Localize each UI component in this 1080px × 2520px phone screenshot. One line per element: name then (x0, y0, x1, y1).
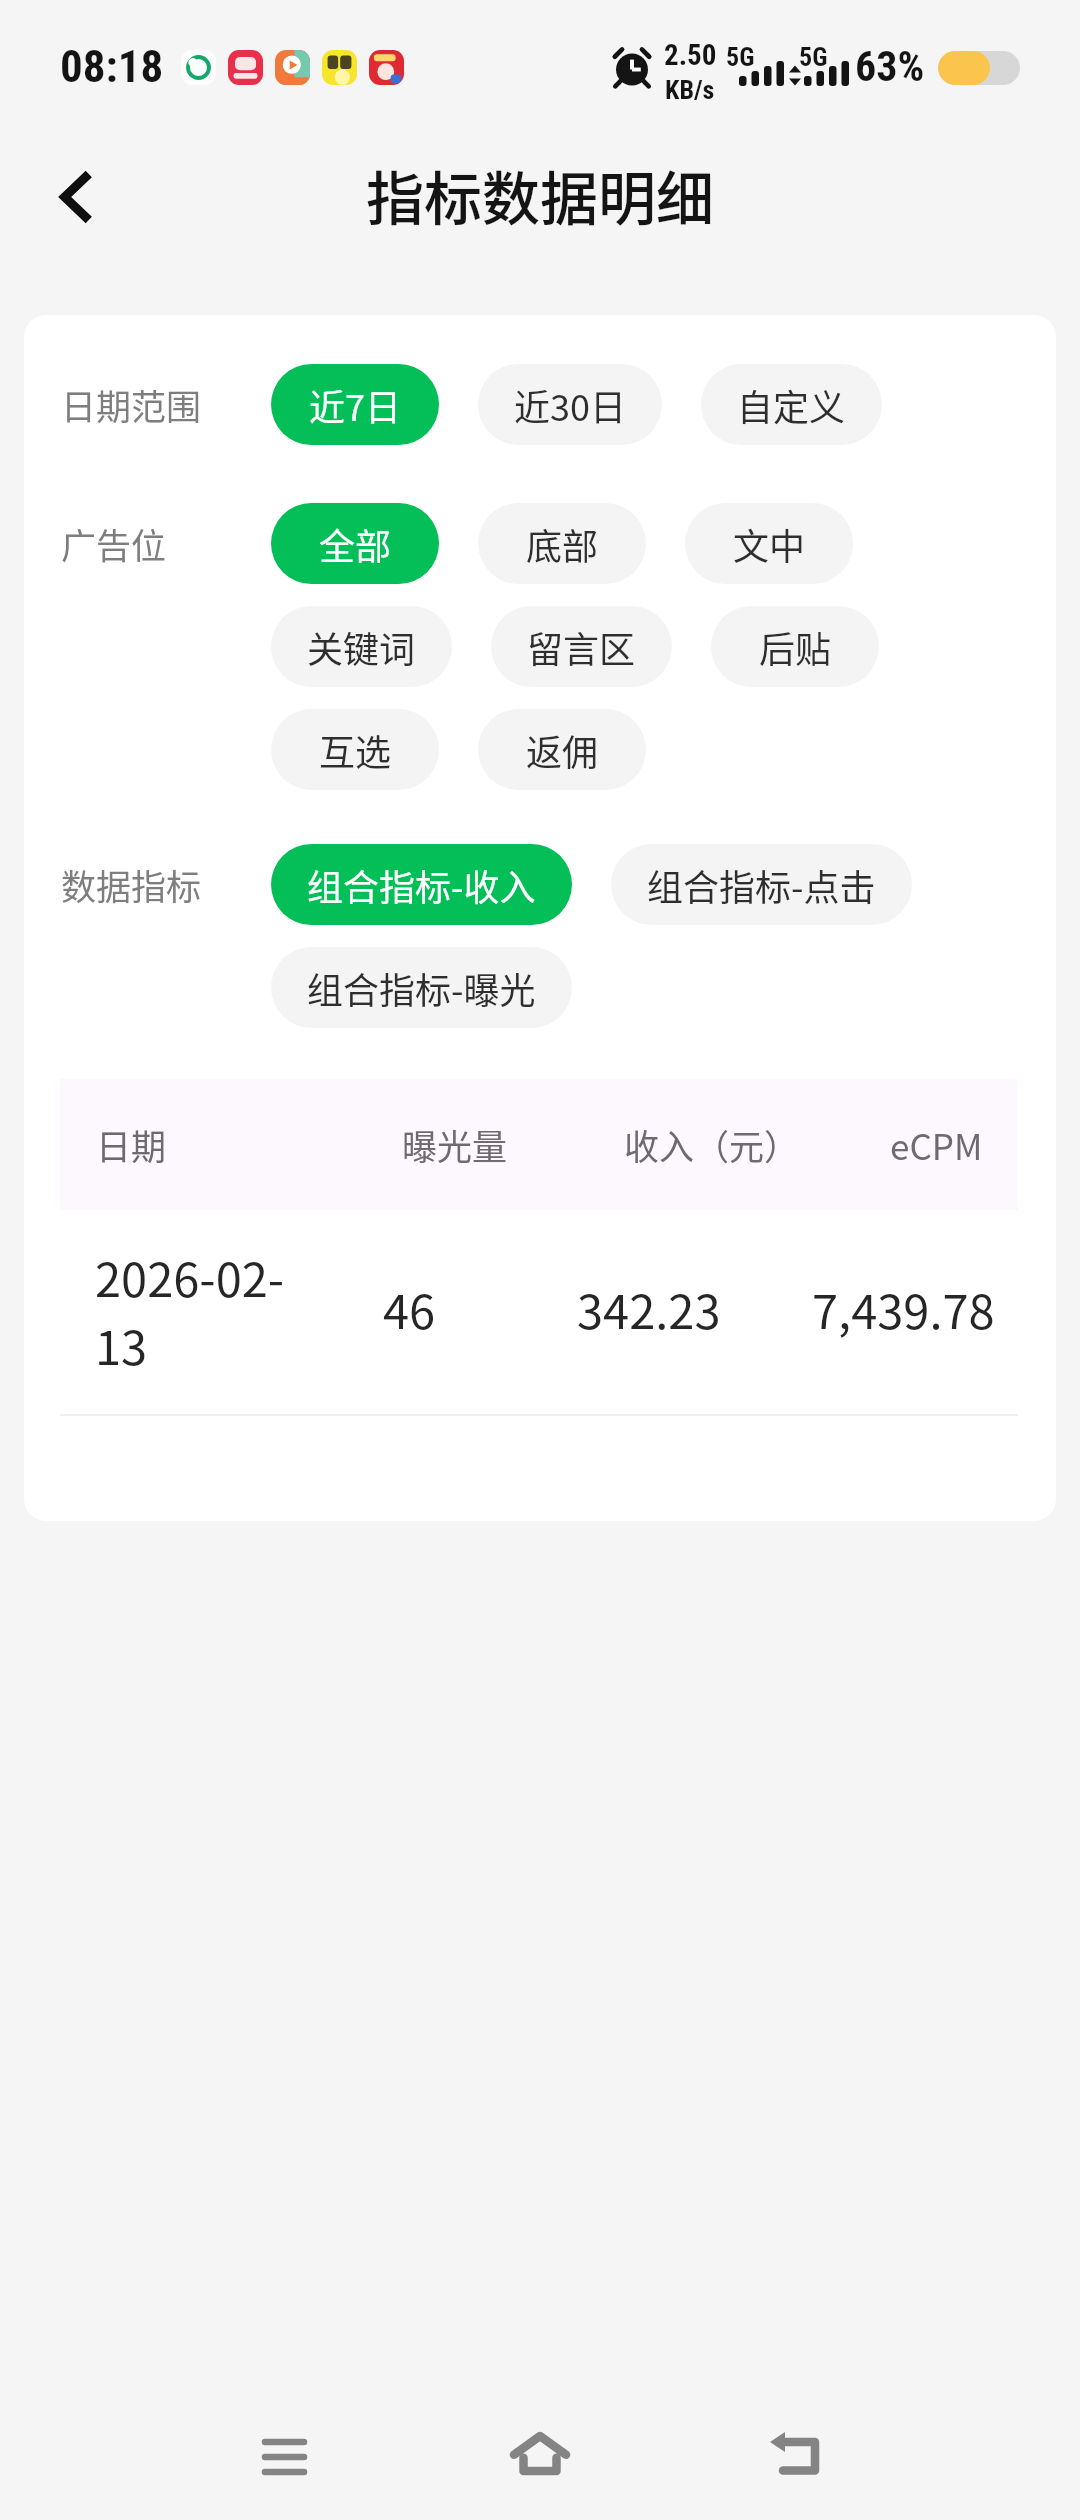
staticText: 7,439.78 (812, 1274, 995, 1342)
staticText: 留言区 (527, 621, 636, 673)
staticText: 近7日 (309, 379, 401, 431)
staticText: 后贴 (759, 621, 832, 673)
staticText: 底部 (526, 518, 599, 570)
button[interactable]: 互选 (271, 709, 439, 790)
staticText: 数据指标 (61, 859, 202, 910)
staticText: 指标数据明细 (0, 153, 1080, 237)
button[interactable]: Home (485, 2398, 595, 2508)
staticText: 近30日 (514, 379, 626, 431)
staticText: 13 (95, 1310, 148, 1378)
staticText: 互选 (319, 724, 392, 776)
staticText: 关键词 (307, 621, 416, 673)
staticText: 63% (855, 42, 925, 91)
staticText: 返佣 (526, 724, 599, 776)
button[interactable]: Back (32, 152, 122, 242)
staticText: 342.23 (577, 1274, 721, 1342)
staticText: 广告位 (61, 518, 167, 569)
button[interactable]: 组合指标-收入 (271, 844, 572, 925)
staticText: 5G (799, 42, 828, 72)
staticText: 2026-02- (95, 1242, 285, 1310)
button[interactable]: 留言区 (491, 606, 672, 687)
button[interactable]: 近7日 (271, 364, 439, 445)
staticText: 08:18 (60, 40, 164, 93)
staticText: 组合指标-点击 (647, 859, 876, 911)
button[interactable]: 近30日 (478, 364, 662, 445)
staticText: 日期 (96, 1119, 167, 1170)
staticText: 全部 (319, 518, 392, 570)
staticText: 2.50 (664, 38, 717, 72)
staticText: 收入（元） (624, 1119, 800, 1170)
staticText: 自定义 (737, 379, 846, 431)
staticText: 曝光量 (402, 1119, 508, 1170)
staticText: 组合指标-收入 (307, 859, 536, 911)
button[interactable]: 返佣 (478, 709, 646, 790)
button[interactable]: 文中 (685, 503, 853, 584)
button[interactable]: 全部 (271, 503, 439, 584)
button[interactable]: Back (740, 2398, 850, 2508)
button[interactable]: 关键词 (271, 606, 452, 687)
button[interactable]: Recent apps (229, 2402, 339, 2512)
button[interactable]: 后贴 (711, 606, 879, 687)
staticText: KB/s (665, 75, 715, 105)
staticText: 文中 (733, 518, 806, 570)
staticText: 日期范围 (61, 379, 202, 430)
button[interactable]: 组合指标-曝光 (271, 947, 572, 1028)
staticText: eCPM (890, 1119, 983, 1170)
staticText: 46 (383, 1274, 436, 1342)
button[interactable]: 自定义 (701, 364, 882, 445)
staticText: 5G (726, 42, 755, 72)
staticText: 组合指标-曝光 (307, 962, 536, 1014)
button[interactable]: 底部 (478, 503, 646, 584)
button[interactable]: 组合指标-点击 (611, 844, 912, 925)
